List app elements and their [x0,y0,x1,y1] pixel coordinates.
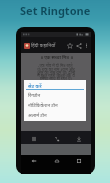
button[interactable]: Share [74,41,83,50]
button[interactable]: Home [52,156,61,165]
button[interactable]: More options [83,42,90,49]
button[interactable]: नोटिफिकेशन टोन [24,100,86,110]
button[interactable]: रिंगटोन [24,90,86,100]
staticText: सेट करें [28,82,42,89]
button[interactable]: Pause [29,134,38,143]
staticText: Set Ringtone [20,3,91,18]
staticText: ॥ एक सच्चा मित्र ॥ [40,54,73,60]
button[interactable]: Favourite [65,41,74,50]
button[interactable]: Recents [74,156,83,165]
staticText: नोटिफिकेशन टोन [28,102,58,109]
staticText: हिंदी कहानियाँ [31,42,56,49]
button[interactable]: Call [52,134,61,143]
button[interactable]: Back [29,156,38,165]
staticText: एक गाँव में दो मित्र रहते थे। एक का नाम … [37,63,75,81]
button[interactable]: अलार्म टोन [24,110,86,120]
button[interactable]: Download [74,134,83,143]
staticText: रिंगटोन [28,92,41,99]
staticText: अलार्म टोन [28,112,47,119]
button[interactable]: App icon [23,42,30,49]
